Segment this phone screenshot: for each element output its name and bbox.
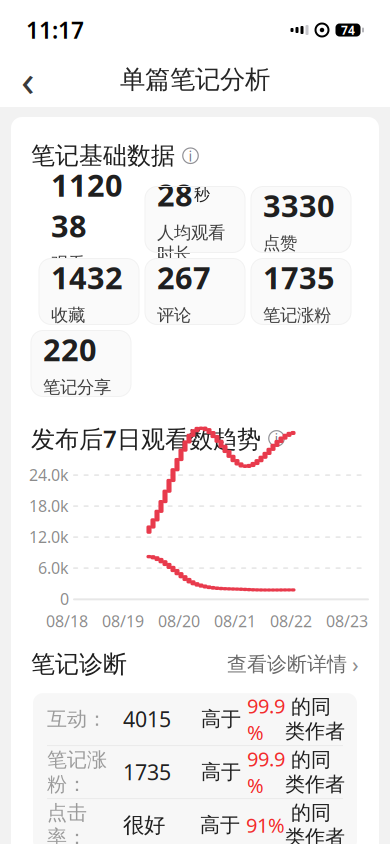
staticText: 112038 [51, 165, 123, 246]
staticText: 18.0k [29, 495, 69, 516]
button[interactable]: 3330 [251, 186, 351, 252]
staticText: 1432 [51, 257, 123, 298]
staticText: 单篇笔记分析 [120, 64, 270, 95]
staticText: 6.0k [38, 557, 69, 578]
staticText: 笔记涨粉： [47, 747, 107, 797]
staticText: 08/19 [102, 610, 144, 632]
staticText: 的同类作者 [285, 694, 345, 744]
staticText: 互动： [47, 707, 107, 731]
staticText: 08/20 [158, 610, 200, 632]
staticText: 高于 [201, 760, 247, 784]
button[interactable]: 1432 [39, 258, 139, 324]
button[interactable]: 28 [145, 186, 245, 252]
staticText: 笔记涨粉 [263, 305, 331, 326]
staticText: 3330 [263, 185, 335, 226]
staticText: 0 [60, 588, 69, 609]
staticText: ‹ [21, 50, 35, 109]
staticText: 11:17 [26, 15, 84, 45]
staticText: 笔记分享 [43, 377, 111, 398]
staticText: 24.0k [29, 464, 69, 485]
staticText: 的同类作者 [285, 800, 345, 844]
staticText: 91% [246, 812, 285, 838]
staticText: 笔记基础数据 [31, 141, 175, 170]
staticText: 笔记诊断 [31, 650, 127, 679]
staticText: 4015 [123, 705, 171, 733]
staticText: 秒 [194, 185, 210, 205]
staticText: 28 [157, 174, 193, 215]
staticText: 人均观看时长 [157, 222, 225, 265]
staticText: 08/18 [46, 610, 88, 632]
staticText: 08/21 [214, 610, 256, 632]
staticText: 1735 [263, 257, 335, 298]
staticText: 74 [341, 22, 355, 38]
staticText: 查看诊断详情 [227, 652, 347, 677]
staticText: 267 [157, 257, 211, 298]
staticText: 的同类作者 [285, 747, 345, 797]
staticText: 12.0k [29, 526, 69, 547]
staticText: 08/22 [270, 610, 312, 632]
staticText: 收藏 [51, 305, 85, 326]
staticText: 很好 [123, 812, 165, 838]
staticText: 220 [43, 329, 97, 370]
staticText: 发布后7日观看数趋势 [31, 422, 261, 454]
staticText: 观看 [51, 253, 85, 274]
staticText: 点击率： [47, 800, 87, 844]
staticText: i [188, 146, 192, 165]
button[interactable]: Back [5, 56, 51, 102]
staticText: 点赞 [263, 233, 297, 254]
staticText: › [352, 650, 359, 678]
button[interactable]: 1735 [251, 258, 351, 324]
button[interactable]: 112038 [39, 186, 139, 252]
button[interactable]: 267 [145, 258, 245, 324]
button[interactable]: 查看诊断详情 [227, 650, 359, 678]
button[interactable]: 220 [31, 330, 131, 396]
staticText: 08/23 [326, 610, 368, 632]
staticText: 高于 [200, 813, 246, 837]
staticText: 99.9% [247, 692, 285, 746]
staticText: 高于 [201, 707, 247, 731]
staticText: 99.9% [247, 745, 285, 799]
staticText: 评论 [157, 305, 191, 326]
staticText: i [274, 429, 278, 448]
staticText: 1735 [123, 758, 171, 786]
